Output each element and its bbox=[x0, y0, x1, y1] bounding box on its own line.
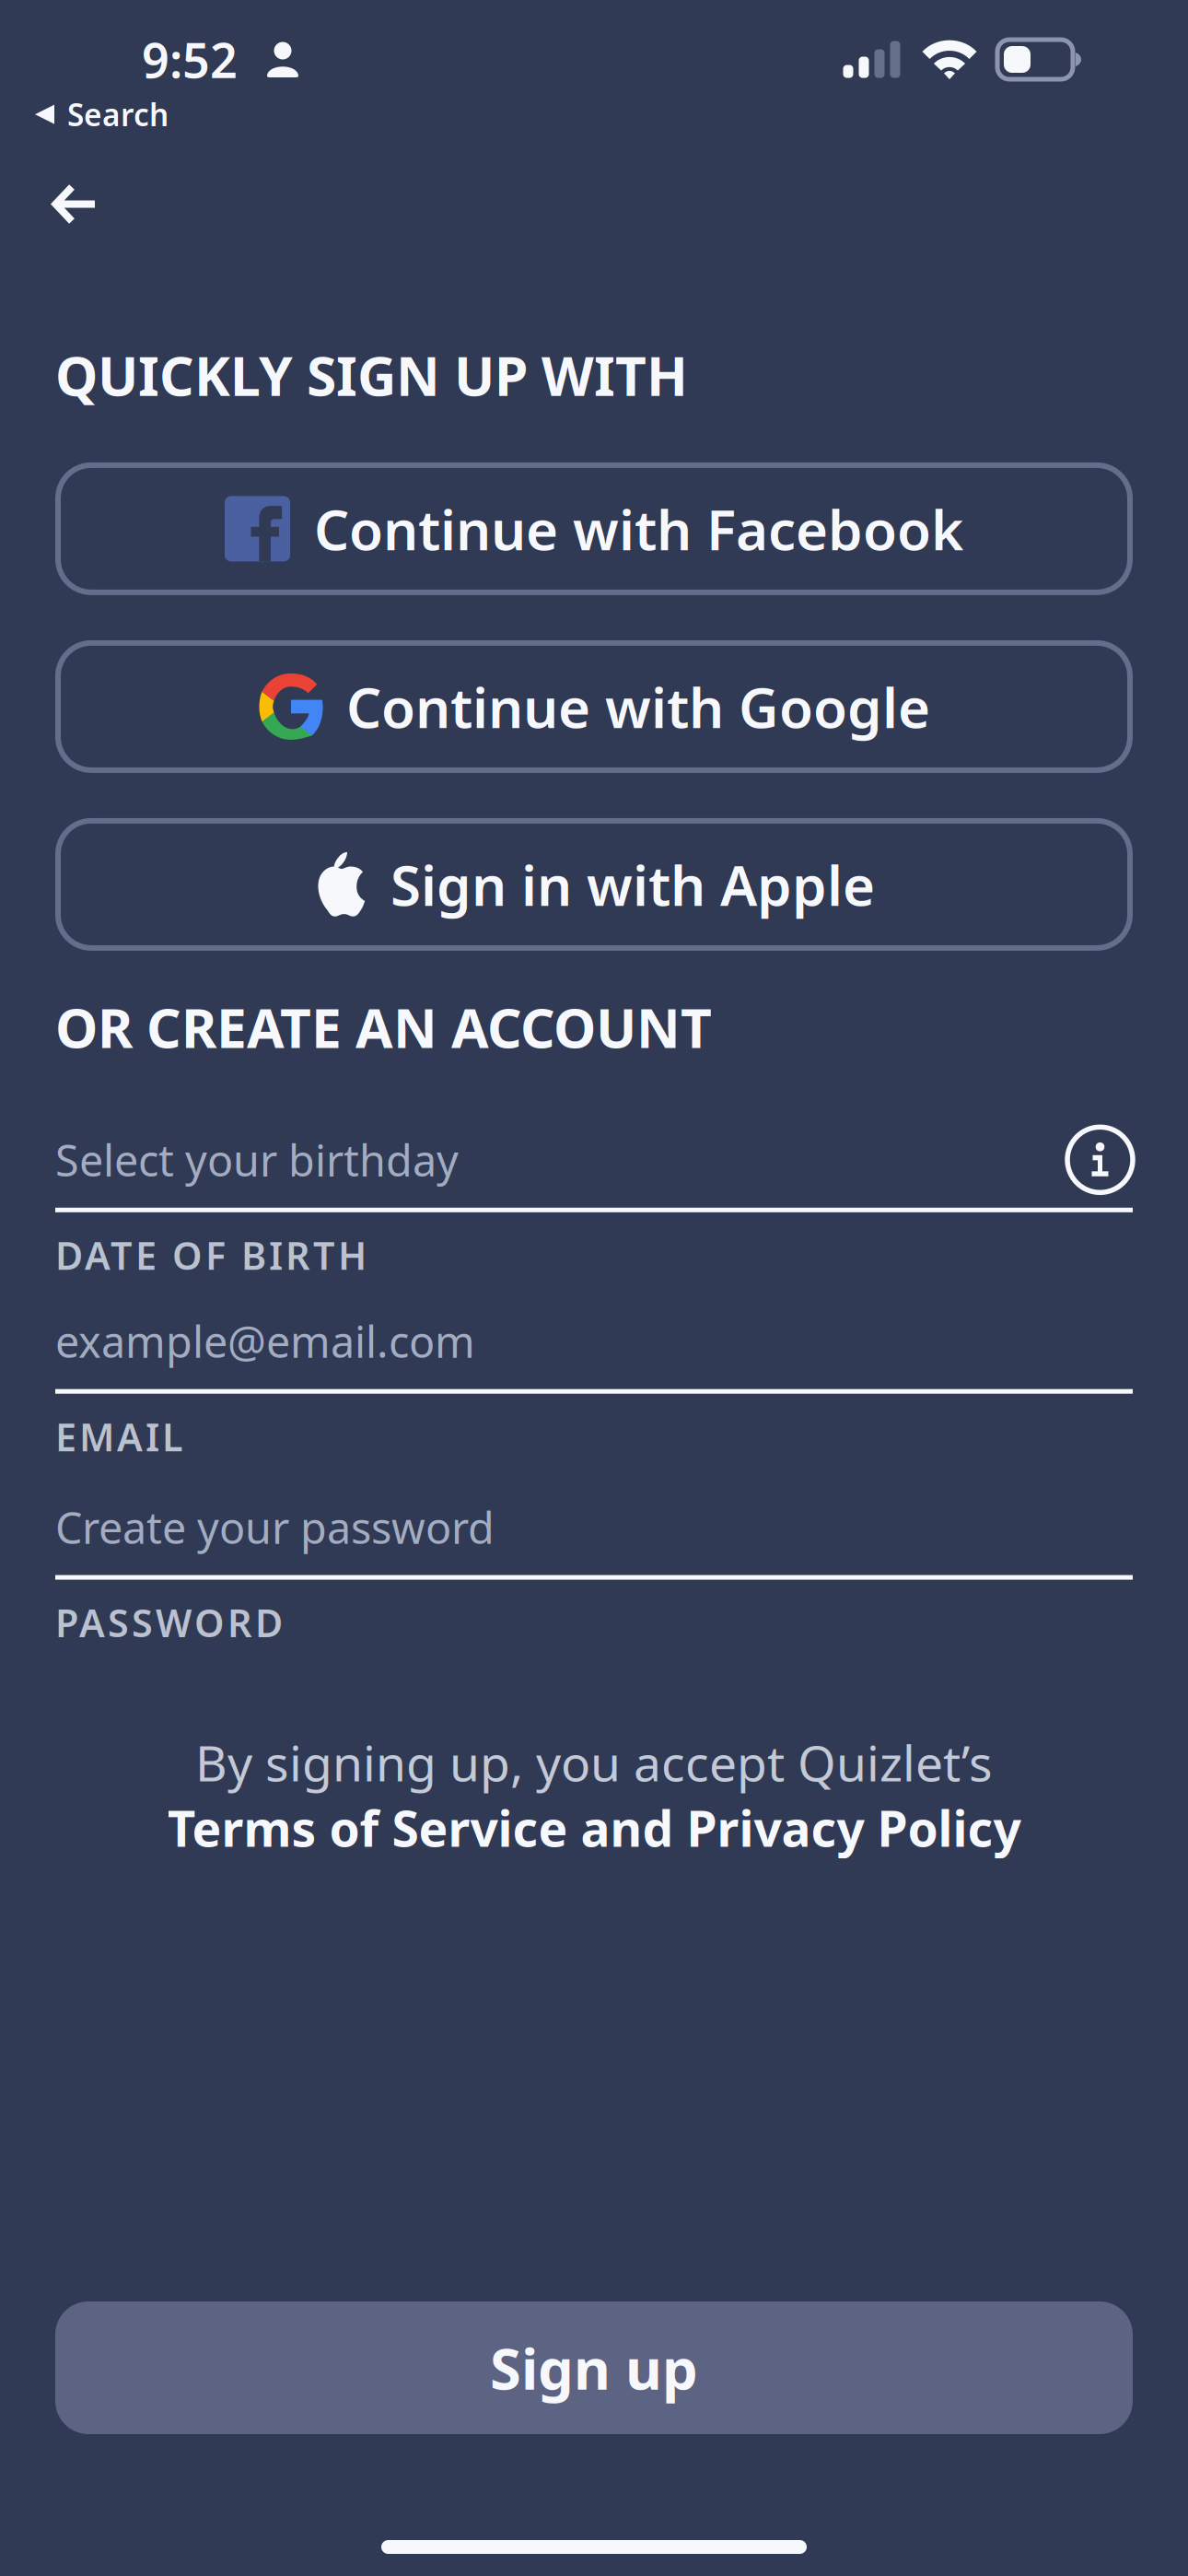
button[interactable]: Sign up bbox=[55, 2301, 1133, 2434]
staticText: Create your password bbox=[55, 1499, 495, 1556]
staticText: EMAIL bbox=[55, 1411, 183, 1462]
staticText: Sign up bbox=[490, 2330, 698, 2405]
staticText: Sign in with Apple bbox=[390, 848, 875, 921]
staticText: example@email.com bbox=[55, 1313, 475, 1370]
button[interactable]: Continue with Facebook bbox=[55, 462, 1133, 595]
button[interactable]: Continue with Google bbox=[55, 640, 1133, 773]
staticText: Continue with Google bbox=[346, 670, 930, 743]
staticText: Search bbox=[67, 94, 169, 135]
staticText: QUICKLY SIGN UP WITH bbox=[55, 339, 688, 411]
staticText: OR CREATE AN ACCOUNT bbox=[55, 991, 712, 1063]
button[interactable]: Birthday information bbox=[1067, 1127, 1133, 1192]
staticText: Continue with Facebook bbox=[314, 492, 963, 566]
staticText: PASSWORD bbox=[55, 1597, 283, 1648]
button[interactable]: Search bbox=[0, 0, 169, 135]
staticText: 9:52 bbox=[142, 28, 238, 91]
button[interactable]: Back bbox=[0, 183, 144, 226]
staticText: DATE OF BIRTH bbox=[55, 1230, 367, 1280]
button[interactable]: Sign in with Apple bbox=[55, 818, 1133, 951]
staticText: By signing up, you accept Quizlet’s bbox=[195, 1730, 993, 1795]
staticText: Select your birthday bbox=[55, 1131, 459, 1188]
staticText: Terms of Service and Privacy Policy bbox=[167, 1795, 1021, 1860]
